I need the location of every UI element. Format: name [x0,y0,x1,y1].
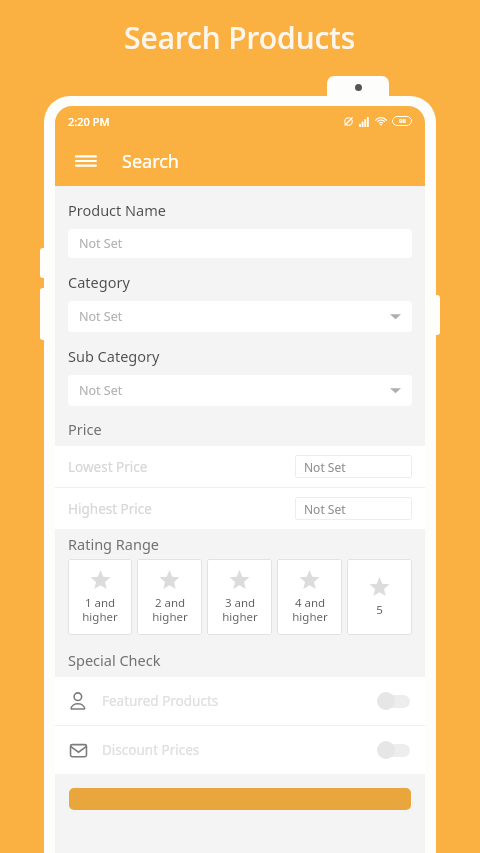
button[interactable]: Featured Products [55,677,425,725]
staticText: Discount Prices [102,741,200,759]
staticText: Special Check [68,650,161,670]
staticText: Category [68,272,130,292]
button[interactable]: Discount Prices [55,726,425,774]
staticText: 2:20 PM [68,114,110,129]
staticText: Product Name [68,200,166,220]
staticText: Not Set [304,501,346,517]
button[interactable]: Discount Prices toggle [377,741,411,759]
staticText: Not Set [79,235,123,252]
button[interactable]: Featured Products toggle [377,692,411,710]
staticText: Search [122,149,179,174]
staticText: 2 and higher [152,595,188,624]
staticText: 1 and higher [82,595,118,624]
staticText: Highest Price [68,500,152,518]
button[interactable]: 2 and higher [137,559,202,635]
button[interactable]: Highest Price [55,488,425,529]
staticText: 98 [399,117,406,125]
button[interactable] [69,788,411,810]
button[interactable]: Not Set [68,375,412,406]
button[interactable]: 4 and higher [277,559,342,635]
staticText: Not Set [304,459,346,475]
staticText: Lowest Price [68,458,148,476]
staticText: Featured Products [102,692,219,710]
button[interactable]: 5 [347,559,412,635]
staticText: Price [68,419,102,439]
staticText: 4 and higher [292,595,328,624]
staticText: 5 [376,602,383,618]
staticText: Rating Range [68,534,159,554]
staticText: Search Products [124,17,356,58]
button[interactable]: Lowest Price [55,446,425,487]
staticText: Sub Category [68,346,160,366]
button[interactable]: Not Set [68,301,412,332]
staticText: 3 and higher [222,595,258,624]
button[interactable]: 1 and higher [68,559,132,635]
button[interactable]: 3 and higher [207,559,272,635]
staticText: Not Set [79,382,123,399]
button[interactable]: Not Set [68,229,412,258]
staticText: Not Set [79,308,123,325]
button[interactable]: Open navigation menu [69,144,103,178]
